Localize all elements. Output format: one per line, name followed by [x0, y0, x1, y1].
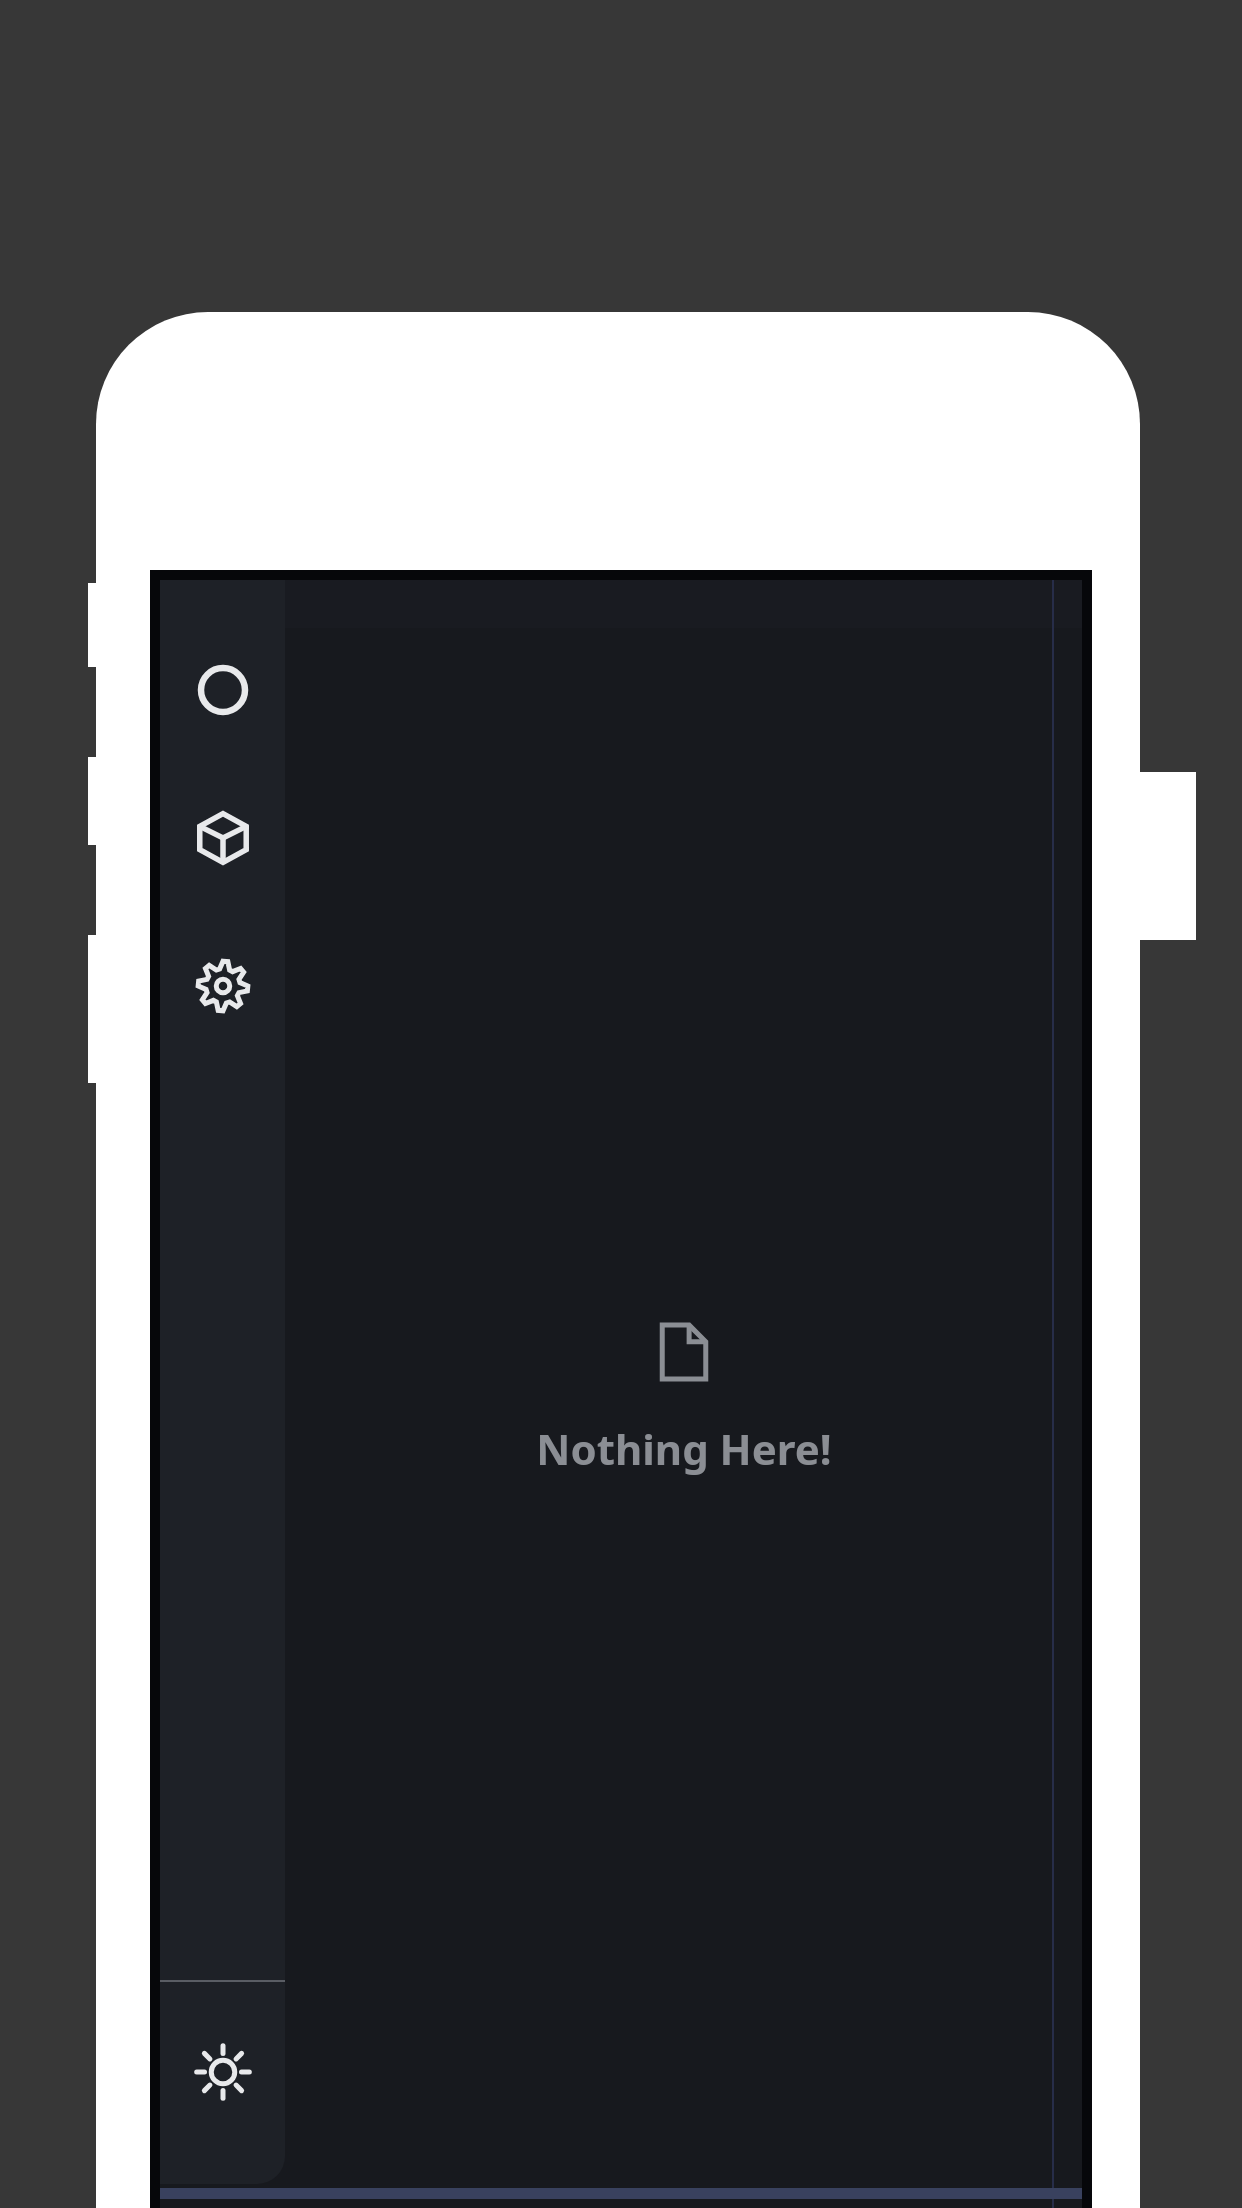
button[interactable]: Home [160, 638, 285, 742]
button[interactable]: Models [160, 786, 285, 890]
staticText: Nothing Here! [536, 1420, 832, 1477]
button[interactable]: Settings [160, 934, 285, 1038]
button[interactable]: Toggle theme [160, 2020, 285, 2124]
